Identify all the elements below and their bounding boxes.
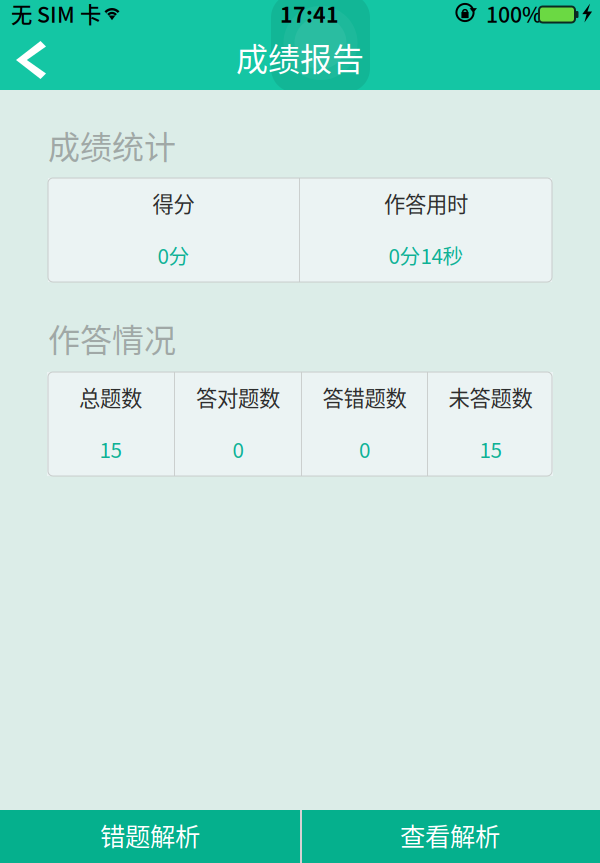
- button[interactable]: 查看解析: [300, 810, 600, 863]
- staticText: 17:41: [280, 0, 339, 29]
- button[interactable]: 错题解析: [0, 810, 300, 863]
- staticText: 错题解析: [100, 817, 200, 853]
- staticText: 未答题数: [448, 382, 532, 412]
- staticText: 答对题数: [196, 382, 280, 412]
- staticText: 0分: [157, 240, 189, 270]
- staticText: 答错题数: [322, 382, 406, 412]
- button[interactable]: Back: [0, 31, 68, 89]
- staticText: 成绩报告: [236, 34, 364, 80]
- staticText: 总题数: [79, 382, 142, 412]
- staticText: 0分14秒: [388, 240, 463, 270]
- staticText: 15: [479, 434, 501, 464]
- staticText: 0: [359, 434, 370, 464]
- staticText: 查看解析: [400, 817, 500, 853]
- staticText: 成绩统计: [48, 122, 176, 168]
- staticText: 100%: [486, 0, 542, 29]
- staticText: 作答情况: [48, 315, 176, 361]
- staticText: 无 SIM 卡: [11, 0, 101, 29]
- staticText: 得分: [152, 188, 194, 218]
- staticText: 0: [232, 434, 243, 464]
- staticText: 作答用时: [384, 188, 468, 218]
- staticText: 15: [99, 434, 121, 464]
